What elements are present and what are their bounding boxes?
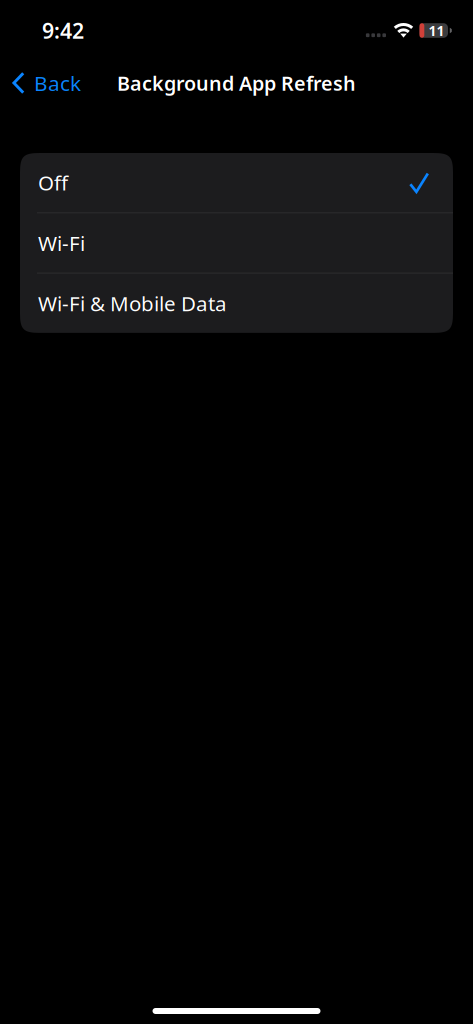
staticText: Off bbox=[38, 169, 68, 197]
button[interactable]: Wi-Fi bbox=[20, 213, 453, 273]
staticText: 11 bbox=[428, 21, 444, 40]
button[interactable]: Wi-Fi & Mobile Data bbox=[20, 274, 453, 333]
staticText: Wi-Fi bbox=[38, 229, 85, 257]
staticText: Background App Refresh bbox=[117, 70, 356, 96]
staticText: 9:42 bbox=[42, 16, 84, 45]
button[interactable]: Off bbox=[20, 153, 453, 212]
button[interactable]: Back bbox=[0, 61, 89, 105]
staticText: Wi-Fi & Mobile Data bbox=[38, 289, 227, 317]
staticText: Back bbox=[34, 69, 81, 97]
